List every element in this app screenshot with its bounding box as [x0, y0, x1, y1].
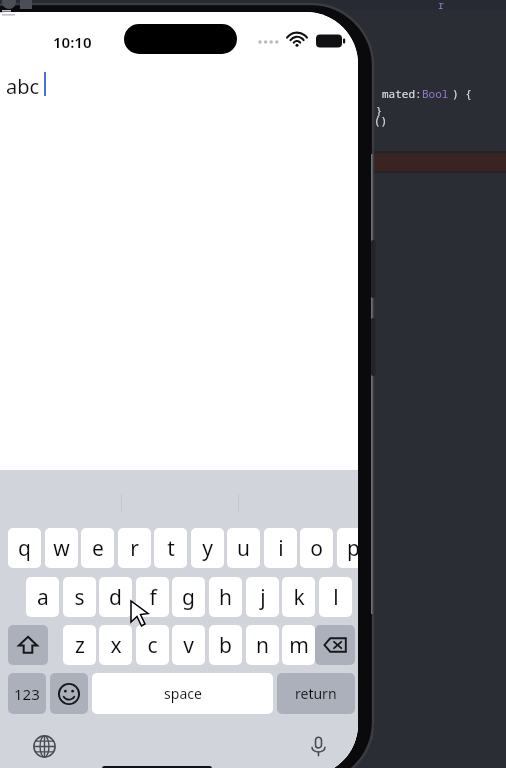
staticText: q	[18, 534, 31, 563]
staticText: f	[149, 583, 157, 612]
staticText: w	[53, 534, 70, 563]
staticText: z	[75, 631, 85, 660]
button[interactable]: l	[319, 577, 352, 617]
staticText: r	[130, 534, 139, 563]
staticText: r	[438, 0, 444, 12]
staticText: n	[256, 631, 269, 660]
button[interactable]: j	[246, 577, 279, 617]
staticText: m	[289, 631, 309, 660]
button[interactable]: d	[99, 577, 132, 617]
button[interactable]: n	[246, 625, 279, 665]
staticText: j	[260, 583, 266, 612]
button[interactable]: r	[118, 528, 151, 568]
staticText: ()	[374, 113, 388, 128]
button[interactable]: 123	[8, 673, 46, 714]
button[interactable]: e	[81, 528, 114, 568]
button[interactable]: i	[264, 528, 297, 568]
staticText: x	[110, 631, 122, 660]
button[interactable]: z	[63, 625, 96, 665]
staticText: b	[219, 631, 232, 660]
staticText: e	[92, 534, 104, 563]
button[interactable]: b	[209, 625, 242, 665]
staticText: l	[333, 583, 339, 612]
staticText: Bool	[422, 86, 449, 101]
button[interactable]: c	[136, 625, 169, 665]
staticText: k	[293, 583, 305, 612]
staticText: mated:	[382, 86, 429, 101]
staticText: return	[295, 684, 337, 703]
staticText: ) {	[452, 86, 472, 101]
staticText: space	[164, 684, 202, 703]
staticText: }	[376, 104, 382, 118]
button[interactable]: x	[99, 625, 132, 665]
button[interactable]: y	[191, 528, 224, 568]
staticText: 10:10	[53, 32, 92, 52]
staticText: 123	[14, 684, 40, 704]
staticText: a	[37, 583, 49, 612]
staticText: abc	[6, 73, 40, 100]
staticText: i	[278, 534, 284, 563]
button[interactable]: t	[154, 528, 187, 568]
button[interactable]: a	[26, 577, 59, 617]
button[interactable]: Key	[50, 673, 88, 714]
staticText: s	[74, 583, 85, 612]
staticText: t	[167, 534, 175, 563]
button[interactable]: m	[282, 625, 315, 665]
button[interactable]: Key	[315, 625, 355, 665]
button[interactable]: u	[227, 528, 260, 568]
staticText: o	[310, 534, 323, 563]
staticText: u	[237, 534, 250, 563]
staticText: d	[109, 583, 122, 612]
staticText: h	[219, 583, 232, 612]
staticText: v	[183, 631, 194, 660]
button[interactable]: Key	[8, 625, 48, 665]
button[interactable]: h	[209, 577, 242, 617]
button[interactable]: q	[8, 528, 41, 568]
staticText: g	[182, 583, 195, 612]
staticText: p	[347, 534, 358, 563]
button[interactable]: o	[300, 528, 333, 568]
button[interactable]: w	[45, 528, 78, 568]
button[interactable]: s	[63, 577, 96, 617]
button[interactable]: k	[282, 577, 315, 617]
button[interactable]: space	[92, 673, 273, 714]
button[interactable]: f	[136, 577, 169, 617]
staticText: y	[202, 534, 213, 563]
button[interactable]: Dictation	[300, 728, 336, 764]
staticText: c	[147, 631, 158, 660]
button[interactable]: g	[172, 577, 205, 617]
button[interactable]: return	[277, 673, 355, 714]
button[interactable]: p	[337, 528, 358, 568]
button[interactable]: Switch keyboard language	[26, 728, 62, 764]
button[interactable]: v	[172, 625, 205, 665]
